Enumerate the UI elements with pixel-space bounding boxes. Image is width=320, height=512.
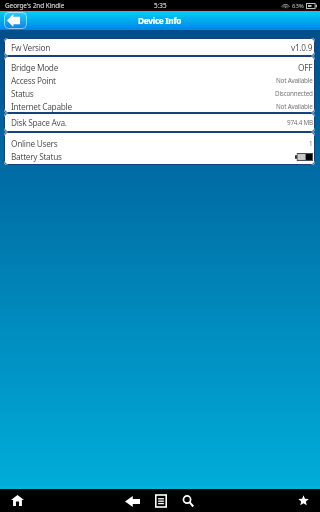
staticText: OFF xyxy=(298,62,313,73)
button[interactable]: Internet Capable xyxy=(11,100,313,113)
button[interactable]: Access Point xyxy=(11,74,313,87)
button[interactable]: Back xyxy=(121,490,143,512)
button[interactable]: Online Users xyxy=(11,137,313,150)
staticText: Disconnected xyxy=(275,89,313,98)
button[interactable]: Bridge Mode xyxy=(11,61,313,74)
staticText: 63% xyxy=(292,2,304,10)
button[interactable]: Disk Space Ava. xyxy=(11,113,313,132)
button[interactable]: Battery Status xyxy=(11,150,313,163)
staticText: Not Available xyxy=(276,76,313,85)
staticText: Internet Capable xyxy=(11,101,72,112)
button[interactable]: Back xyxy=(4,12,27,29)
staticText: Status xyxy=(11,88,34,99)
staticText: Fw Version xyxy=(11,42,51,53)
staticText: George's 2nd Kindle xyxy=(5,1,65,10)
staticText: Device Info xyxy=(138,15,182,26)
staticText: Bridge Mode xyxy=(11,62,59,73)
staticText: Not Available xyxy=(276,102,313,111)
button[interactable]: Favorites xyxy=(291,489,315,512)
button[interactable]: Menu xyxy=(150,490,172,512)
staticText: Online Users xyxy=(11,138,58,149)
staticText: 974.4 MB xyxy=(287,118,313,127)
staticText: Disk Space Ava. xyxy=(11,117,67,128)
button[interactable]: Search xyxy=(177,490,199,512)
button[interactable]: Fw Version xyxy=(11,38,313,56)
button[interactable]: Home xyxy=(5,489,29,512)
staticText: Battery Status xyxy=(11,151,62,162)
staticText: Access Point xyxy=(11,75,56,86)
staticText: 1 xyxy=(309,139,313,148)
staticText: 5:35 xyxy=(154,1,167,10)
button[interactable]: Status xyxy=(11,87,313,100)
staticText: v1.0.9 xyxy=(291,42,313,53)
